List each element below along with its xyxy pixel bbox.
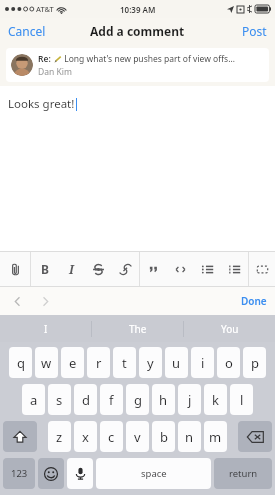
button[interactable]: The <box>92 315 183 342</box>
button[interactable]: Code <box>167 252 194 286</box>
button[interactable]: l <box>230 384 253 415</box>
button[interactable]: h <box>152 384 175 415</box>
button[interactable]: Shift <box>3 421 37 452</box>
staticText: a <box>30 391 38 409</box>
staticText: 123 <box>11 467 28 480</box>
button[interactable]: Numbered list <box>221 252 248 286</box>
staticText: Add a comment <box>90 23 185 39</box>
button[interactable]: Previous field <box>6 290 28 312</box>
button[interactable]: Done <box>233 287 275 315</box>
button[interactable]: Quote <box>140 252 167 286</box>
button[interactable]: o <box>217 347 240 378</box>
button[interactable]: p <box>243 347 266 378</box>
button[interactable]: n <box>178 421 201 452</box>
staticText: Post <box>242 23 267 39</box>
button[interactable]: e <box>61 347 84 378</box>
button[interactable]: I <box>58 252 85 286</box>
staticText: f <box>109 391 114 409</box>
button[interactable]: x <box>74 421 97 452</box>
button[interactable]: Next field <box>34 290 56 312</box>
button[interactable]: Cancel <box>0 18 54 44</box>
button[interactable]: u <box>165 347 188 378</box>
staticText: Dan Kim <box>38 66 72 78</box>
button[interactable]: b <box>152 421 175 452</box>
staticText: AT&T <box>36 4 54 14</box>
button[interactable]: d <box>74 384 97 415</box>
button[interactable]: space <box>96 458 211 489</box>
staticText: m <box>209 428 222 446</box>
button[interactable]: Re: <box>6 48 269 82</box>
button[interactable]: m <box>204 421 227 452</box>
staticText: q <box>17 354 25 372</box>
button[interactable]: You <box>184 315 275 342</box>
staticText: I <box>69 261 74 277</box>
staticText: The <box>129 322 147 336</box>
button[interactable]: B <box>31 252 58 286</box>
staticText: Re: <box>38 53 53 65</box>
staticText: h <box>159 391 168 409</box>
staticText: p <box>251 354 259 372</box>
staticText: Done <box>241 294 267 308</box>
staticText: n <box>185 428 194 446</box>
button[interactable]: c <box>100 421 123 452</box>
staticText: c <box>108 428 115 446</box>
button[interactable]: Attach <box>0 252 30 286</box>
staticText: l <box>240 391 244 409</box>
button[interactable]: g <box>126 384 149 415</box>
button[interactable]: Dictate <box>67 458 93 489</box>
staticText: t <box>122 354 127 372</box>
staticText: e <box>69 354 77 372</box>
staticText: Looks great! <box>8 96 75 112</box>
button[interactable]: v <box>126 421 149 452</box>
staticText: return <box>229 467 258 480</box>
staticText: i <box>201 354 205 372</box>
button[interactable]: t <box>113 347 136 378</box>
button[interactable]: Post <box>234 18 275 44</box>
staticText: x <box>82 428 89 446</box>
button[interactable]: j <box>178 384 201 415</box>
button[interactable]: 123 <box>3 458 35 489</box>
staticText: 10:39 AM <box>120 4 156 15</box>
button[interactable]: Link <box>112 252 139 286</box>
staticText: g <box>134 391 142 409</box>
staticText: z <box>56 428 63 446</box>
button[interactable]: return <box>214 458 272 489</box>
button[interactable]: Looks great! <box>0 86 275 251</box>
staticText: space <box>141 467 167 480</box>
staticText: y <box>147 354 154 372</box>
staticText: u <box>172 354 181 372</box>
button[interactable]: a <box>22 384 45 415</box>
staticText: o <box>225 354 233 372</box>
button[interactable]: Delete <box>238 421 272 452</box>
staticText: s <box>56 391 63 409</box>
staticText: d <box>82 391 90 409</box>
staticText: v <box>134 428 141 446</box>
button[interactable]: z <box>48 421 71 452</box>
staticText: k <box>212 391 219 409</box>
button[interactable]: f <box>100 384 123 415</box>
staticText: B <box>41 261 49 277</box>
button[interactable]: Emoji <box>38 458 64 489</box>
staticText: r <box>96 354 102 372</box>
button[interactable]: r <box>87 347 110 378</box>
button[interactable]: Strikethrough <box>85 252 112 286</box>
button[interactable]: Bulleted list <box>194 252 221 286</box>
button[interactable]: q <box>9 347 32 378</box>
button[interactable]: s <box>48 384 71 415</box>
button[interactable]: I <box>0 315 91 342</box>
staticText: j <box>188 391 192 409</box>
button[interactable]: More <box>249 252 275 286</box>
staticText: You <box>221 322 239 336</box>
staticText: Cancel <box>8 23 46 39</box>
staticText: Long what's new pushes part of view offs… <box>62 53 235 65</box>
button[interactable]: y <box>139 347 162 378</box>
staticText: w <box>41 354 52 372</box>
button[interactable]: k <box>204 384 227 415</box>
staticText: I <box>44 322 48 336</box>
button[interactable]: w <box>35 347 58 378</box>
button[interactable]: i <box>191 347 214 378</box>
staticText: b <box>160 428 168 446</box>
